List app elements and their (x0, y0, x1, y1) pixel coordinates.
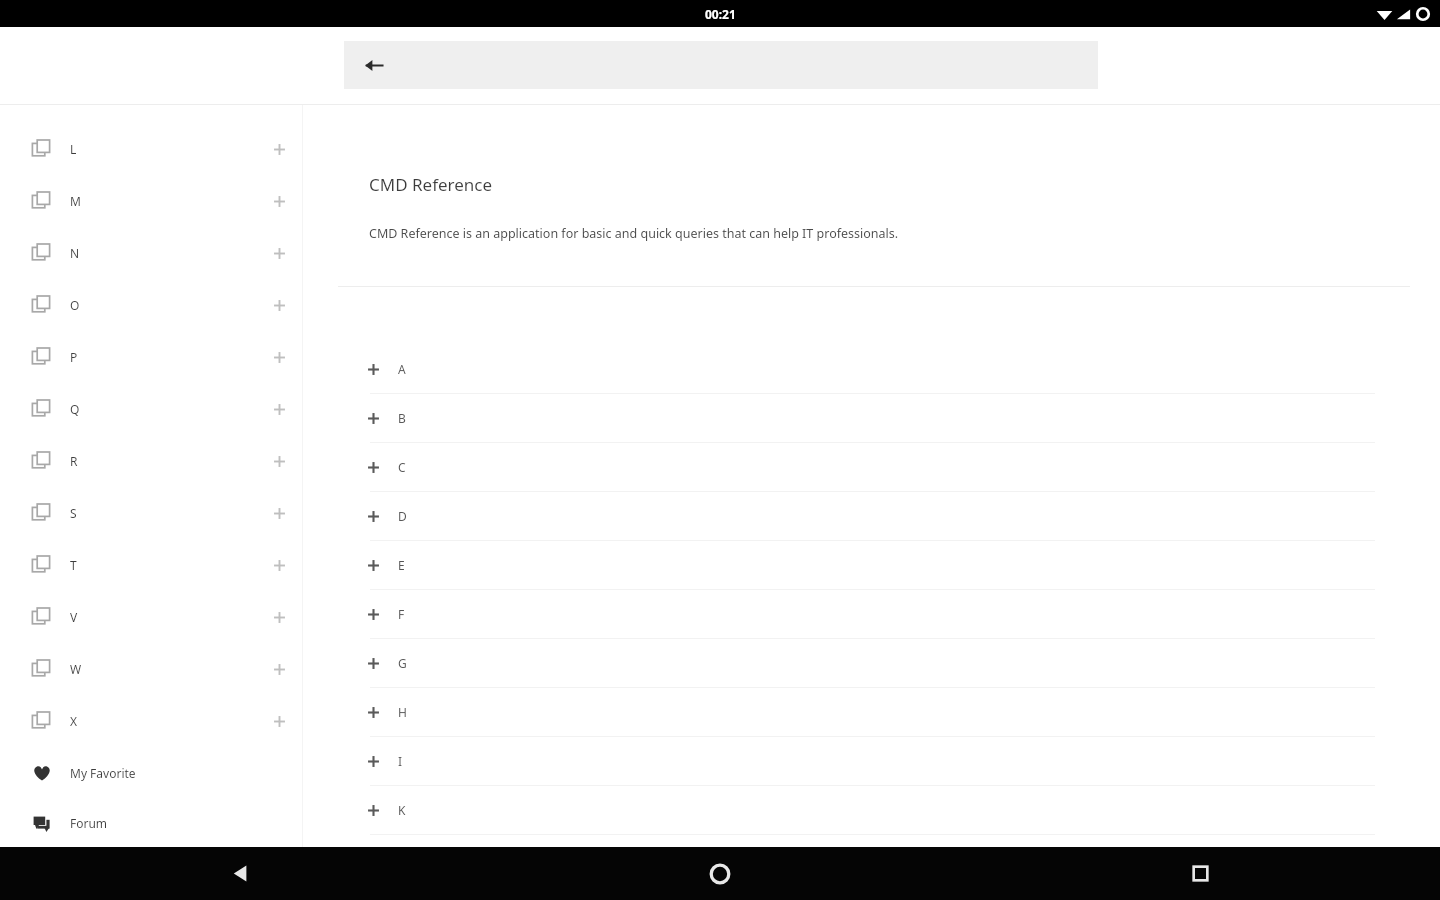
button[interactable]: B (303, 394, 1440, 442)
button[interactable]: G (303, 639, 1440, 687)
staticText: G (398, 655, 407, 671)
button[interactable]: Back (354, 45, 394, 85)
button[interactable]: M (0, 175, 303, 227)
staticText: E (398, 557, 405, 573)
staticText: 00:21 (705, 6, 736, 22)
staticText: V (70, 609, 78, 625)
staticText: S (70, 505, 77, 521)
button[interactable]: Expand L (262, 132, 296, 166)
button[interactable]: S (0, 487, 303, 539)
button[interactable]: Home (480, 847, 960, 900)
button[interactable]: A (303, 345, 1440, 393)
staticText: D (398, 508, 407, 524)
staticText: Q (70, 401, 80, 417)
staticText: CMD Reference (369, 173, 493, 196)
button[interactable]: T (0, 539, 303, 591)
staticText: My Favorite (70, 765, 136, 781)
button[interactable]: Expand T (262, 548, 296, 582)
button[interactable]: Expand P (262, 340, 296, 374)
button[interactable]: V (0, 591, 303, 643)
staticText: H (398, 704, 407, 720)
button[interactable]: E (303, 541, 1440, 589)
button[interactable]: O (0, 279, 303, 331)
button[interactable]: Forum (0, 799, 303, 847)
staticText: X (70, 713, 78, 729)
button[interactable]: X (0, 695, 303, 747)
button[interactable]: Expand X (262, 704, 296, 738)
staticText: O (70, 297, 80, 313)
button[interactable]: Expand W (262, 652, 296, 686)
staticText: W (70, 661, 82, 677)
button[interactable]: Expand O (262, 288, 296, 322)
button[interactable]: Expand S (262, 496, 296, 530)
button[interactable]: P (0, 331, 303, 383)
button[interactable]: I (303, 737, 1440, 785)
staticText: I (398, 753, 403, 769)
staticText: CMD Reference is an application for basi… (369, 225, 899, 242)
button[interactable]: L (0, 123, 303, 175)
button[interactable]: F (303, 590, 1440, 638)
staticText: N (70, 245, 80, 261)
button[interactable]: Expand N (262, 236, 296, 270)
button[interactable]: Expand Q (262, 392, 296, 426)
button[interactable]: C (303, 443, 1440, 491)
staticText: C (398, 459, 406, 475)
button[interactable]: H (303, 688, 1440, 736)
staticText: M (70, 193, 81, 209)
button[interactable]: Back (0, 847, 480, 900)
button[interactable]: D (303, 492, 1440, 540)
staticText: F (398, 606, 405, 622)
button[interactable]: N (0, 227, 303, 279)
staticText: R (70, 453, 78, 469)
staticText: T (70, 557, 77, 573)
staticText: P (70, 349, 78, 365)
button[interactable]: Expand R (262, 444, 296, 478)
button[interactable]: Expand V (262, 600, 296, 634)
button[interactable]: Expand M (262, 184, 296, 218)
button[interactable]: Recents (960, 847, 1440, 900)
button[interactable]: R (0, 435, 303, 487)
button[interactable]: My Favorite (0, 747, 303, 799)
staticText: A (398, 361, 406, 377)
staticText: Forum (70, 815, 108, 831)
button[interactable]: W (0, 643, 303, 695)
staticText: K (398, 802, 406, 818)
button[interactable]: Q (0, 383, 303, 435)
staticText: L (70, 141, 77, 157)
staticText: B (398, 410, 406, 426)
button[interactable]: K (303, 786, 1440, 834)
